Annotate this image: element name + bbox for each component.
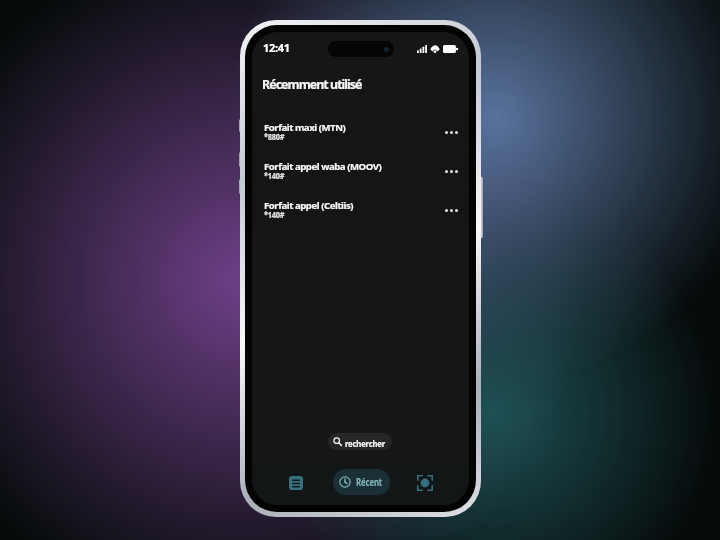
button[interactable]: Récent (333, 469, 390, 495)
button[interactable]: Forfait appel waba (MOOV) (252, 152, 469, 190)
staticText: *140# (264, 208, 284, 221)
staticText: Forfait appel (Celtiis) (264, 199, 354, 212)
button[interactable]: Scan code (412, 470, 438, 496)
staticText: 12:41 (263, 40, 290, 55)
button[interactable]: More options (441, 200, 461, 220)
button[interactable]: More options (441, 122, 461, 142)
staticText: *880# (264, 130, 284, 143)
button[interactable]: All codes (283, 470, 309, 496)
staticText: Récemment utilisé (262, 76, 362, 93)
staticText: rechercher (345, 437, 386, 450)
staticText: Récent (356, 476, 382, 489)
staticText: Forfait appel waba (MOOV) (264, 160, 382, 173)
staticText: *140# (264, 169, 284, 182)
button[interactable]: Forfait appel (Celtiis) (252, 191, 469, 229)
button[interactable]: rechercher (328, 433, 392, 450)
button[interactable]: Forfait maxi (MTN) (252, 113, 469, 151)
staticText: Forfait maxi (MTN) (264, 121, 346, 134)
button[interactable]: More options (441, 161, 461, 181)
